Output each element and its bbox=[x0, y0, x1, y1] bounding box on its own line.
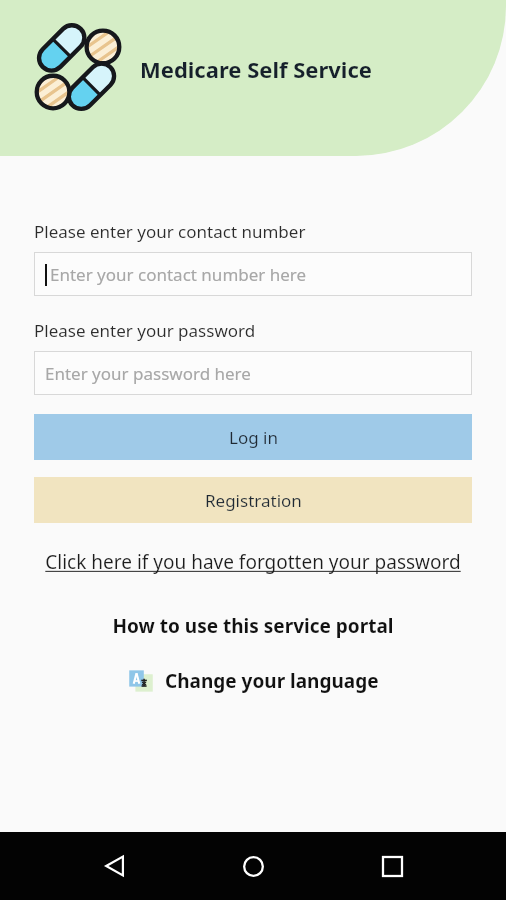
staticText: Please enter your password bbox=[34, 319, 256, 342]
staticText: How to use this service portal bbox=[34, 613, 472, 639]
button[interactable]: Home bbox=[229, 842, 277, 890]
button[interactable]: Log in bbox=[34, 414, 472, 460]
button[interactable]: Enter your password here bbox=[34, 351, 472, 395]
staticText: Log in bbox=[229, 426, 278, 449]
button[interactable]: Registration bbox=[34, 477, 472, 523]
button[interactable]: How to use this service portal bbox=[34, 611, 472, 641]
button[interactable]: Back bbox=[91, 842, 139, 890]
button[interactable]: Click here if you have forgotten your pa… bbox=[34, 547, 472, 577]
button[interactable]: Recent apps bbox=[368, 842, 416, 890]
staticText: Click here if you have forgotten your pa… bbox=[44, 549, 462, 575]
staticText: Enter your contact number here bbox=[50, 263, 307, 286]
button[interactable]: Enter your contact number here bbox=[34, 252, 472, 296]
staticText: Please enter your contact number bbox=[34, 220, 306, 243]
staticText: Medicare Self Service bbox=[140, 54, 372, 84]
staticText: Registration bbox=[205, 489, 302, 512]
staticText: Enter your password here bbox=[45, 362, 251, 385]
button[interactable]: Change your language bbox=[34, 665, 472, 697]
staticText: Change your language bbox=[165, 668, 379, 694]
